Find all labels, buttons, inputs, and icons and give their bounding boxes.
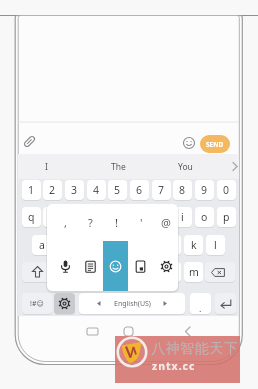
- staticText: o: [201, 210, 208, 224]
- button[interactable]: i: [173, 207, 192, 227]
- button[interactable]: l: [206, 235, 225, 255]
- staticText: x: [83, 265, 89, 279]
- button[interactable]: 7: [152, 180, 171, 200]
- staticText: l: [214, 238, 217, 252]
- staticText: 9: [201, 183, 208, 197]
- button[interactable]: g: [119, 235, 138, 255]
- button[interactable]: m: [184, 262, 203, 282]
- staticText: zntx.cc: [152, 359, 196, 373]
- button[interactable]: 8: [173, 180, 192, 200]
- button[interactable]: w: [43, 207, 62, 227]
- button[interactable]: [134, 260, 147, 273]
- button[interactable]: [54, 293, 75, 314]
- button[interactable]: ?: [78, 207, 102, 238]
- button[interactable]: z: [54, 262, 73, 282]
- staticText: i: [181, 210, 184, 224]
- button[interactable]: [84, 260, 97, 273]
- button[interactable]: [160, 260, 173, 273]
- button[interactable]: a: [32, 235, 51, 255]
- button[interactable]: 9: [195, 180, 214, 200]
- staticText: 8: [179, 183, 186, 197]
- button[interactable]: q: [22, 207, 41, 227]
- button[interactable]: English(US): [79, 293, 185, 314]
- button[interactable]: 1: [22, 180, 41, 200]
- staticText: 3: [71, 183, 78, 197]
- staticText: k: [191, 238, 197, 252]
- button[interactable]: !#☺: [22, 293, 52, 314]
- staticText: !#☺: [30, 299, 44, 309]
- button[interactable]: u: [152, 207, 171, 227]
- button[interactable]: ': [129, 207, 153, 238]
- button[interactable]: 5: [108, 180, 127, 200]
- button[interactable]: 0: [217, 180, 236, 200]
- button[interactable]: c: [97, 262, 116, 282]
- button[interactable]: 2: [43, 180, 62, 200]
- button[interactable]: ,: [53, 207, 77, 238]
- button[interactable]: [205, 262, 235, 282]
- staticText: q: [28, 210, 35, 224]
- staticText: 0: [223, 183, 230, 197]
- button[interactable]: j: [162, 235, 181, 255]
- button[interactable]: [23, 135, 36, 148]
- button[interactable]: [22, 262, 52, 282]
- button[interactable]: [123, 326, 134, 337]
- button[interactable]: t: [108, 207, 127, 227]
- button[interactable]: 4: [87, 180, 106, 200]
- button[interactable]: e: [65, 207, 84, 227]
- staticText: f: [105, 238, 109, 252]
- button[interactable]: v: [119, 262, 138, 282]
- staticText: SEND: [206, 140, 224, 149]
- staticText: a: [39, 238, 45, 252]
- staticText: 2: [49, 183, 56, 197]
- button[interactable]: [59, 260, 72, 273]
- button[interactable]: !: [104, 207, 128, 238]
- button[interactable]: @: [154, 207, 178, 238]
- button[interactable]: SEND: [200, 135, 230, 153]
- staticText: 7: [158, 183, 165, 197]
- button[interactable]: x: [76, 262, 95, 282]
- staticText: z: [61, 265, 66, 279]
- button[interactable]: I: [26, 154, 66, 179]
- button[interactable]: You: [165, 154, 205, 179]
- button[interactable]: b: [141, 262, 160, 282]
- button[interactable]: y: [130, 207, 149, 227]
- staticText: 6: [136, 183, 143, 197]
- button[interactable]: .: [190, 293, 211, 314]
- button[interactable]: r: [87, 207, 106, 227]
- staticText: @: [161, 215, 171, 230]
- button[interactable]: [182, 136, 196, 150]
- button[interactable]: p: [217, 207, 236, 227]
- staticText: n: [168, 265, 175, 279]
- staticText: ?: [88, 215, 93, 230]
- button[interactable]: The: [98, 154, 138, 179]
- button[interactable]: n: [162, 262, 181, 282]
- button[interactable]: [86, 327, 99, 336]
- staticText: u: [158, 210, 165, 224]
- staticText: You: [178, 161, 193, 173]
- button[interactable]: 6: [130, 180, 149, 200]
- staticText: ,: [64, 215, 67, 230]
- button[interactable]: k: [184, 235, 203, 255]
- staticText: .: [199, 302, 202, 314]
- button[interactable]: 3: [65, 180, 84, 200]
- staticText: g: [125, 238, 132, 252]
- button[interactable]: o: [195, 207, 214, 227]
- staticText: m: [189, 265, 199, 279]
- button[interactable]: [184, 326, 191, 337]
- button[interactable]: f: [97, 235, 116, 255]
- button[interactable]: [215, 293, 236, 314]
- staticText: 1: [28, 183, 35, 197]
- staticText: t: [116, 210, 120, 224]
- button[interactable]: [232, 162, 238, 171]
- button[interactable]: [109, 260, 122, 273]
